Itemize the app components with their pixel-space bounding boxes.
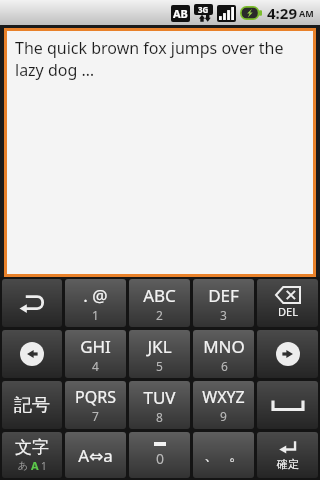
staticText: 確定: [277, 457, 299, 471]
staticText: TUV: [143, 386, 176, 409]
button[interactable]: Switch input mode: [2, 432, 62, 478]
staticText: 3G: [198, 4, 209, 15]
staticText: 1: [92, 307, 99, 323]
staticText: 3: [220, 307, 227, 323]
button[interactable]: TUV: [129, 381, 190, 429]
button[interactable]: JKL: [129, 330, 190, 378]
button[interactable]: 0: [129, 432, 190, 478]
button[interactable]: Delete: [257, 279, 318, 327]
button[interactable]: PQRS: [65, 381, 126, 429]
staticText: . @: [83, 284, 108, 307]
staticText: JKL: [147, 335, 172, 358]
staticText: 。: [229, 446, 244, 465]
staticText: AM: [299, 7, 314, 19]
staticText: あ: [18, 459, 29, 472]
button[interactable]: WXYZ: [193, 381, 254, 429]
staticText: AB: [173, 6, 188, 21]
button[interactable]: A⇔a: [65, 432, 126, 478]
staticText: A: [31, 458, 39, 473]
button[interactable]: Confirm: [257, 432, 318, 478]
staticText: The quick brown fox jumps over the lazy …: [15, 37, 307, 81]
button[interactable]: Undo: [2, 279, 62, 327]
staticText: 9: [220, 408, 227, 424]
button[interactable]: DEF: [193, 279, 254, 327]
staticText: 1: [41, 459, 47, 473]
button[interactable]: ABC: [129, 279, 190, 327]
button[interactable]: Space: [257, 381, 318, 429]
staticText: MNO: [203, 335, 245, 358]
staticText: ABC: [143, 284, 176, 307]
staticText: 記号: [14, 394, 50, 417]
staticText: DEF: [208, 284, 239, 307]
button[interactable]: Move cursor left: [2, 330, 62, 378]
staticText: PQRS: [75, 386, 116, 408]
staticText: 文字: [15, 437, 49, 458]
staticText: 7: [92, 408, 99, 424]
staticText: 5: [156, 358, 163, 374]
button[interactable]: 記号: [2, 381, 62, 429]
staticText: 0: [156, 449, 165, 468]
staticText: 8: [156, 409, 163, 425]
staticText: WXYZ: [202, 386, 245, 408]
staticText: 4:29: [267, 3, 297, 23]
button[interactable]: Comma period: [193, 432, 254, 478]
button[interactable]: GHI: [65, 330, 126, 378]
button[interactable]: MNO: [193, 330, 254, 378]
button[interactable]: Move cursor right: [257, 330, 318, 378]
staticText: A⇔a: [78, 444, 113, 467]
button[interactable]: . @: [65, 279, 126, 327]
staticText: 6: [221, 358, 228, 374]
staticText: 、: [204, 446, 219, 465]
staticText: 4: [92, 358, 99, 374]
staticText: GHI: [80, 335, 111, 358]
button[interactable]: The quick brown fox jumps over the lazy …: [7, 31, 313, 274]
staticText: DEL: [278, 304, 298, 319]
staticText: 2: [156, 307, 163, 323]
